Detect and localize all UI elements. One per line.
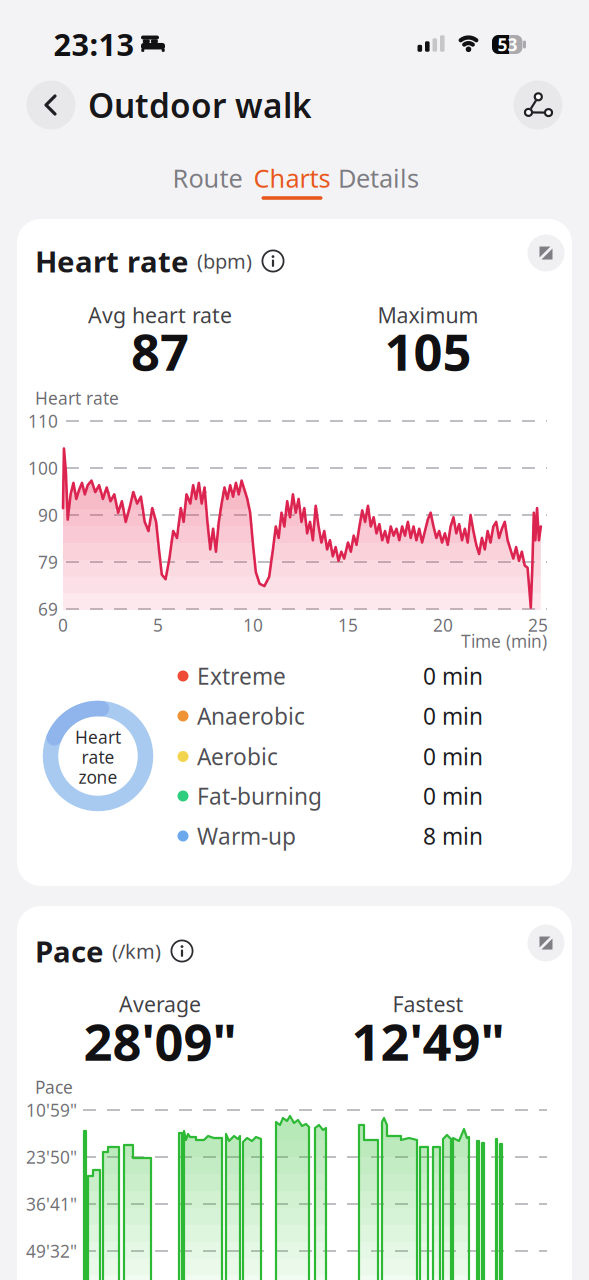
staticText: Heart rate [35,386,119,409]
staticText: 49'32" [26,1239,77,1262]
staticText: 10'59" [26,1098,77,1121]
staticText: 105 [384,317,471,385]
staticText: 0 min [423,661,483,691]
staticText: (/km) [112,938,161,964]
button[interactable]: Pace info [169,938,195,964]
staticText: Heart rate [35,241,189,280]
staticText: 0 min [423,741,483,771]
staticText: Aerobic [197,741,278,771]
staticText: 79 [38,550,58,573]
staticText: 23'50" [26,1145,77,1168]
button[interactable]: Share [513,80,562,129]
staticText: 36'41" [26,1192,77,1215]
button[interactable]: Expand pace chart [527,924,564,961]
staticText: 20 [433,613,453,636]
staticText: 0 min [423,701,483,731]
staticText: Time (min) [461,629,547,652]
staticText: Outdoor walk [88,83,312,127]
staticText: 8 min [423,821,483,851]
staticText: 5 [153,613,163,636]
button[interactable]: Details [338,161,419,195]
staticText: 0 [58,613,68,636]
staticText: Pace [35,931,104,970]
staticText: 90 [38,503,58,526]
button[interactable]: Expand heart rate chart [527,234,564,271]
staticText: Warm-up [197,821,296,851]
staticText: Pace [35,1075,73,1098]
staticText: Avg heart rate [88,301,232,329]
button[interactable]: Route [172,161,242,195]
staticText: 110 [28,409,58,432]
staticText: Charts [253,161,330,195]
staticText: zone [78,765,117,788]
staticText: 0 min [423,781,483,811]
staticText: Maximum [377,301,478,329]
staticText: Route [172,161,242,195]
button[interactable]: Back [26,80,75,129]
staticText: 25 [528,613,548,636]
staticText: 100 [28,456,58,479]
staticText: Fastest [392,990,463,1018]
staticText: Heart [75,725,121,748]
staticText: Fat-burning [197,781,322,811]
staticText: (bpm) [197,248,252,274]
staticText: 12'49" [351,1007,504,1075]
staticText: 87 [131,317,189,385]
staticText: Anaerobic [197,701,305,731]
staticText: 23:13 [53,24,134,64]
staticText: 15 [338,613,358,636]
staticText: Average [119,990,201,1018]
staticText: 69 [38,597,58,620]
staticText: 28'09" [83,1007,236,1075]
staticText: 10 [243,613,263,636]
staticText: rate [81,745,114,768]
button[interactable]: Heart rate info [260,248,286,274]
staticText: Extreme [197,661,286,691]
staticText: Details [338,161,419,195]
staticText: 53 [497,33,517,56]
button[interactable]: Charts [253,161,330,195]
